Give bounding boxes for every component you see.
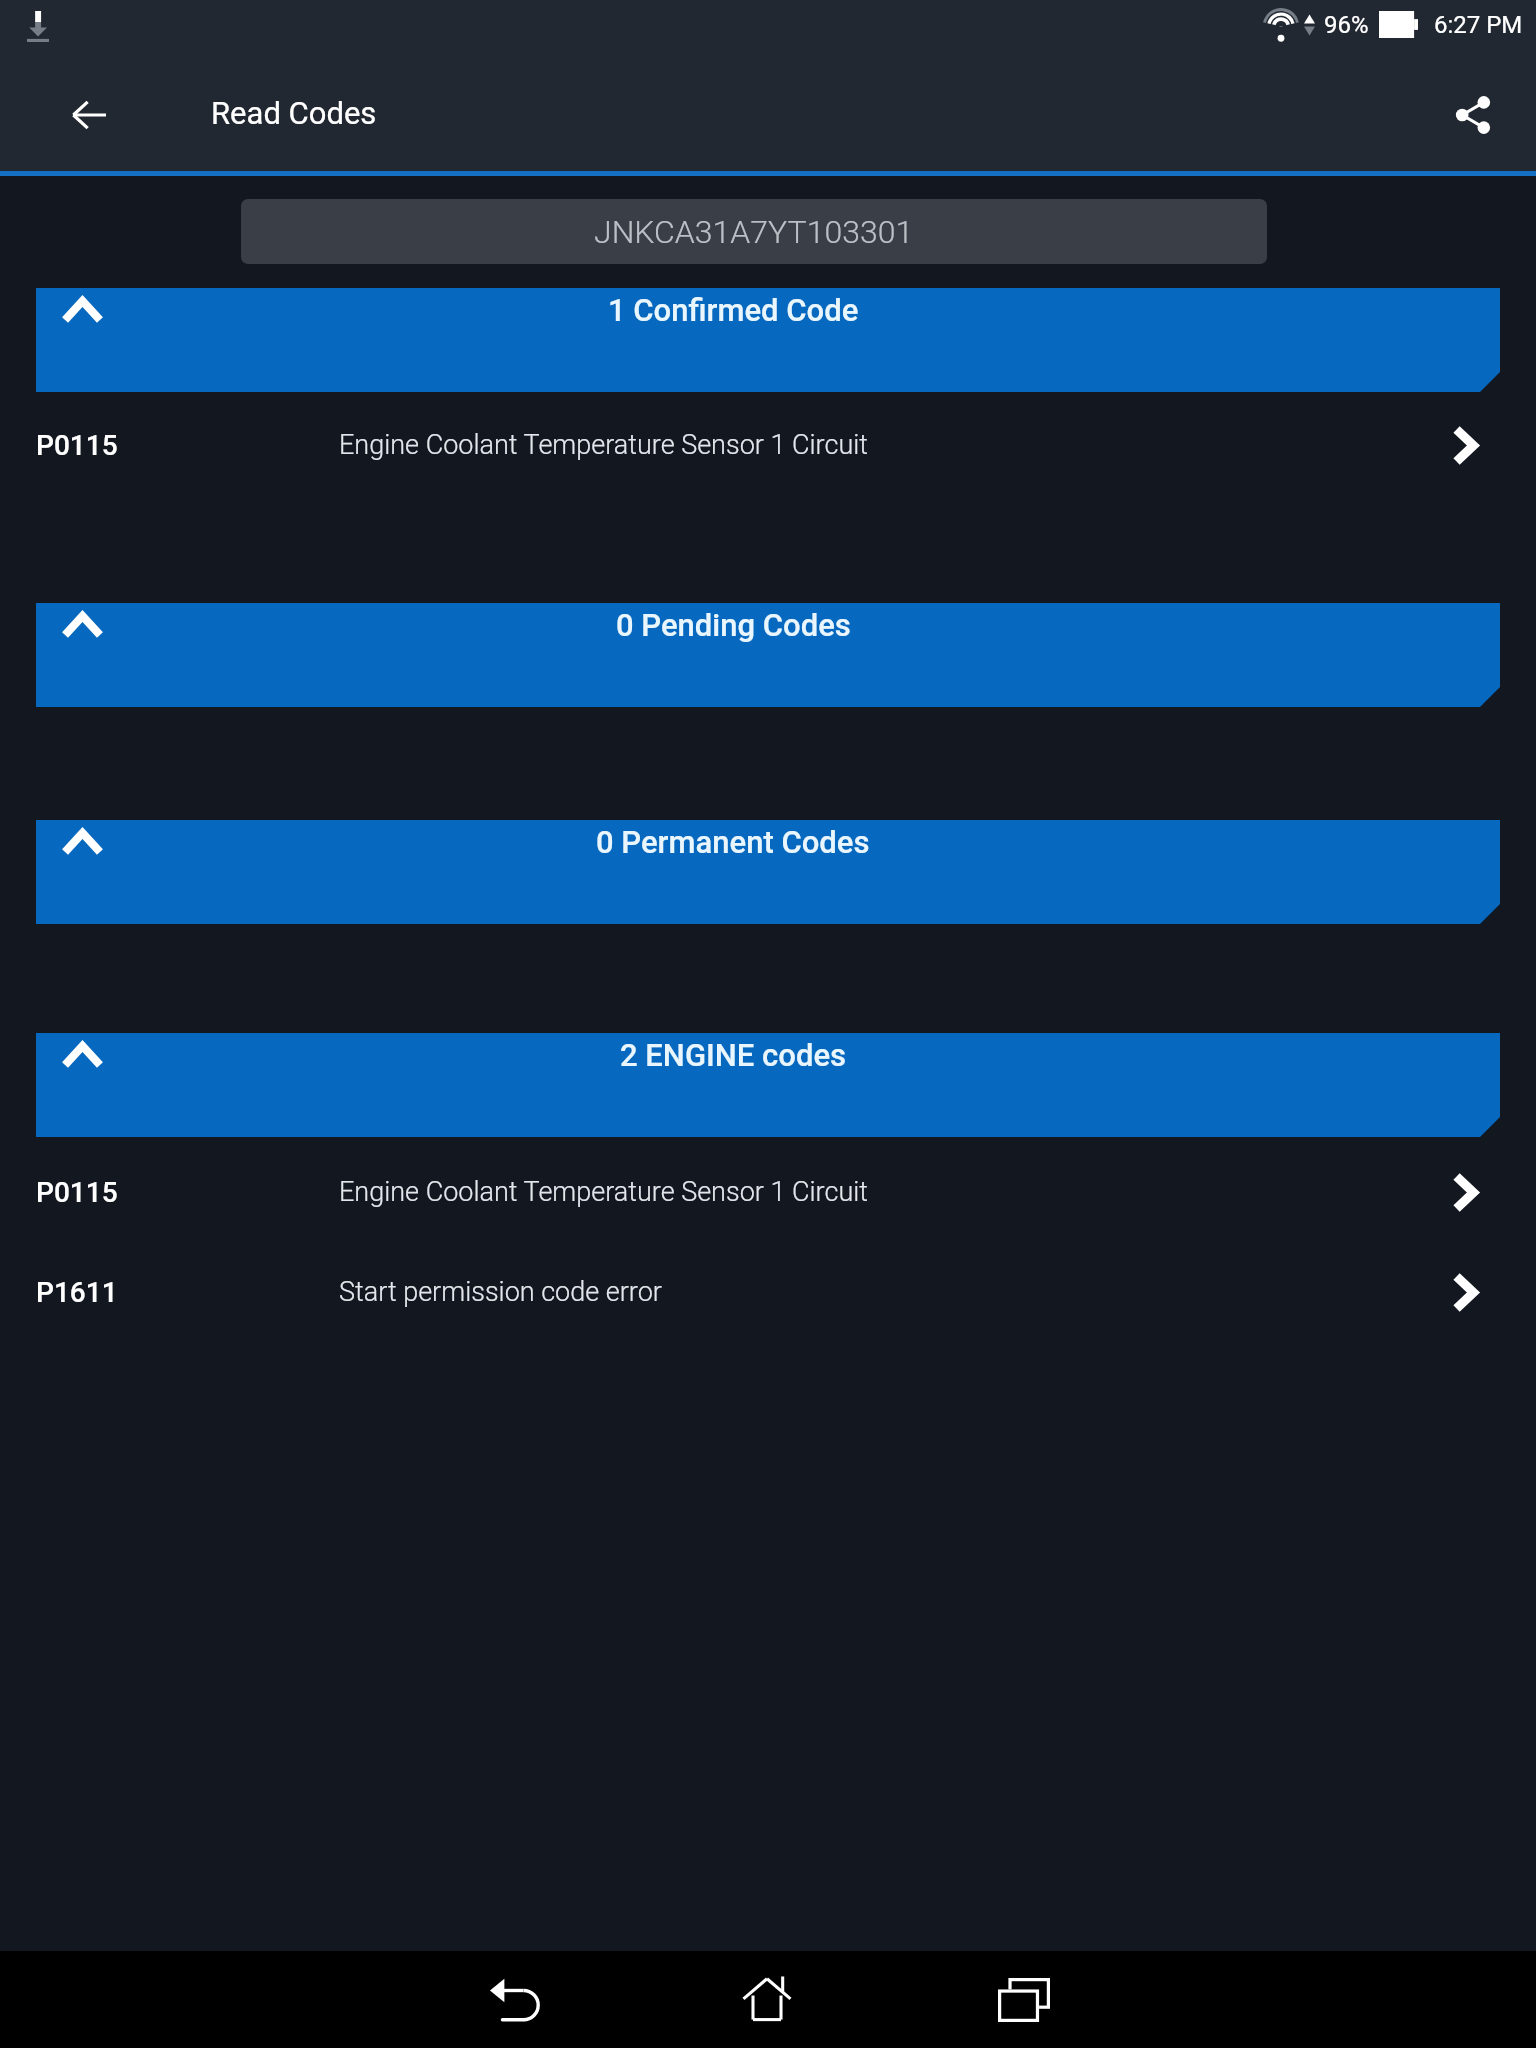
button[interactable]: P0115 (0, 1150, 1536, 1234)
button[interactable]: JNKCA31A7YT103301 (241, 199, 1267, 264)
button[interactable]: 2 ENGINE codes (36, 1033, 1500, 1137)
staticText: 6:27 PM (1434, 11, 1523, 39)
button[interactable]: P0115 (0, 403, 1536, 487)
button[interactable]: 1 Confirmed Code (36, 288, 1500, 392)
staticText: 2 ENGINE codes (620, 1037, 847, 1073)
staticText: 1 Confirmed Code (608, 292, 859, 328)
staticText: Engine Coolant Temperature Sensor 1 Circ… (339, 429, 868, 461)
button[interactable]: Share (1416, 58, 1529, 171)
button[interactable]: Navigate up (0, 58, 178, 171)
staticText: 96% (1324, 11, 1369, 39)
staticText: Read Codes (211, 95, 377, 131)
staticText: P1611 (36, 1276, 339, 1309)
button[interactable]: P1611 (0, 1250, 1536, 1334)
staticText: P0115 (36, 429, 339, 462)
button[interactable]: Recent apps (964, 1951, 1084, 2048)
staticText: 0 Pending Codes (616, 607, 851, 643)
staticText: P0115 (36, 1176, 339, 1209)
staticText: Engine Coolant Temperature Sensor 1 Circ… (339, 1176, 868, 1208)
staticText: Start permission code error (339, 1276, 662, 1308)
staticText: 0 Permanent Codes (596, 824, 870, 860)
button[interactable]: 0 Permanent Codes (36, 820, 1500, 924)
button[interactable]: Back (453, 1951, 573, 2048)
button[interactable]: 0 Pending Codes (36, 603, 1500, 707)
button[interactable]: Home (707, 1951, 827, 2048)
staticText: JNKCA31A7YT103301 (594, 213, 914, 251)
